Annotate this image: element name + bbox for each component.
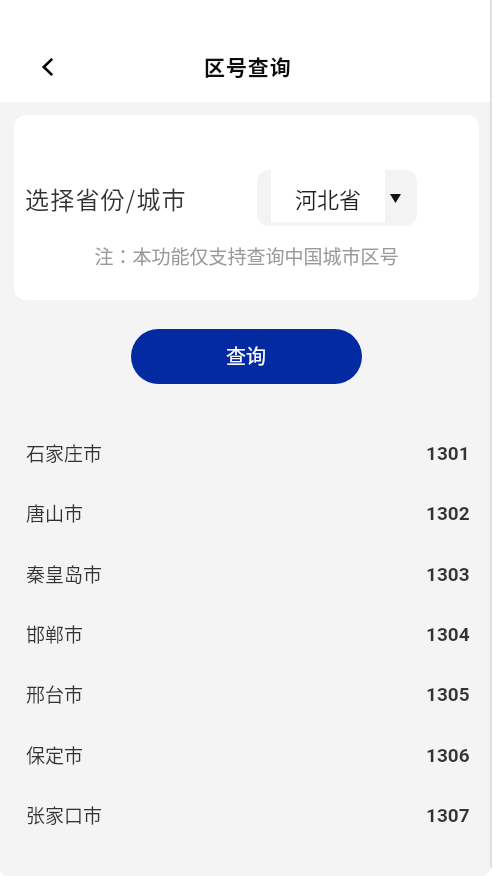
staticText: 1303 bbox=[426, 563, 470, 585]
staticText: 张家口市 bbox=[26, 801, 103, 829]
staticText: 注：本功能仅支持查询中国城市区号 bbox=[14, 242, 479, 270]
staticText: 唐山市 bbox=[26, 499, 84, 527]
button[interactable]: Back bbox=[24, 43, 72, 91]
staticText: 邢台市 bbox=[26, 680, 84, 708]
staticText: 1306 bbox=[426, 744, 470, 766]
button[interactable]: 邯郸市 bbox=[0, 604, 493, 664]
staticText: 石家庄市 bbox=[26, 439, 103, 467]
staticText: 1307 bbox=[426, 804, 470, 826]
button[interactable]: 张家口市 bbox=[0, 785, 493, 845]
button[interactable]: 保定市 bbox=[0, 725, 493, 785]
button[interactable]: Select province bbox=[257, 170, 417, 226]
button[interactable]: 唐山市 bbox=[0, 483, 493, 543]
button[interactable]: 石家庄市 bbox=[0, 423, 493, 483]
staticText: 区号查询 bbox=[204, 51, 292, 81]
staticText: 1304 bbox=[426, 623, 470, 645]
button[interactable]: 秦皇岛市 bbox=[0, 544, 493, 604]
staticText: 查询 bbox=[226, 341, 266, 370]
staticText: 1301 bbox=[426, 442, 470, 464]
staticText: 1302 bbox=[426, 502, 470, 524]
button[interactable]: 查询 bbox=[131, 329, 362, 384]
staticText: 选择省份/城市 bbox=[25, 181, 187, 216]
staticText: 保定市 bbox=[26, 741, 84, 769]
staticText: 河北省 bbox=[295, 182, 362, 214]
staticText: 秦皇岛市 bbox=[26, 560, 103, 588]
staticText: 1305 bbox=[426, 683, 470, 705]
staticText: 邯郸市 bbox=[26, 620, 84, 648]
button[interactable]: 邢台市 bbox=[0, 664, 493, 724]
